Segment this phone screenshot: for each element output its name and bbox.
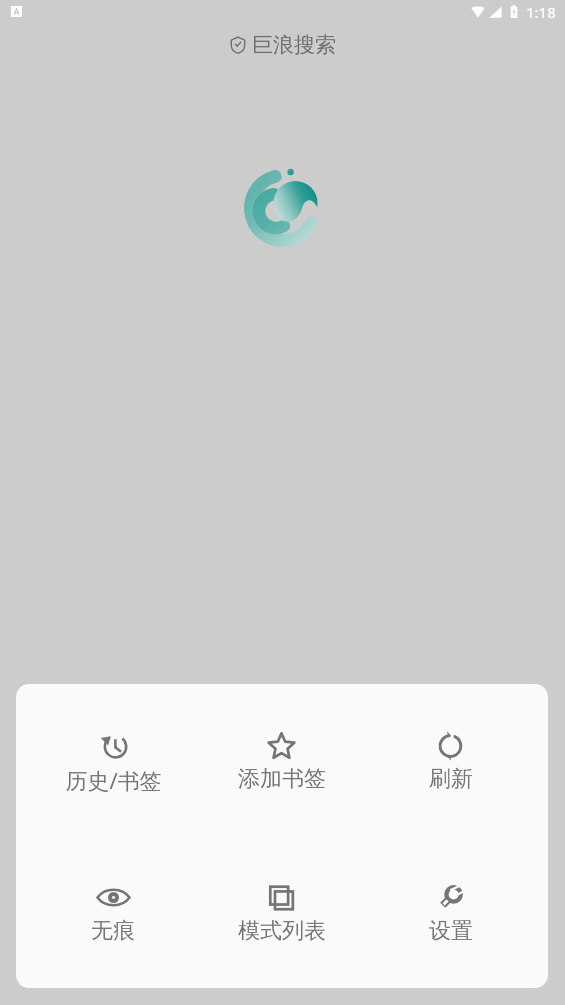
staticText: 添加书签	[238, 765, 326, 793]
button[interactable]: 添加书签	[197, 730, 366, 795]
staticText: 1:18	[526, 2, 556, 22]
staticText: 刷新	[429, 765, 473, 793]
staticText: 历史/书签	[65, 765, 162, 795]
staticText: 巨浪搜索	[252, 32, 336, 58]
button[interactable]: 历史/书签	[29, 730, 197, 797]
button[interactable]: 刷新	[366, 730, 535, 795]
button[interactable]: 模式列表	[197, 882, 366, 947]
staticText: 模式列表	[238, 917, 326, 945]
staticText: 无痕	[91, 917, 135, 945]
staticText: 设置	[429, 917, 473, 945]
staticText: A	[14, 6, 20, 17]
button[interactable]: 无痕	[29, 882, 197, 947]
button[interactable]: 设置	[366, 882, 535, 947]
